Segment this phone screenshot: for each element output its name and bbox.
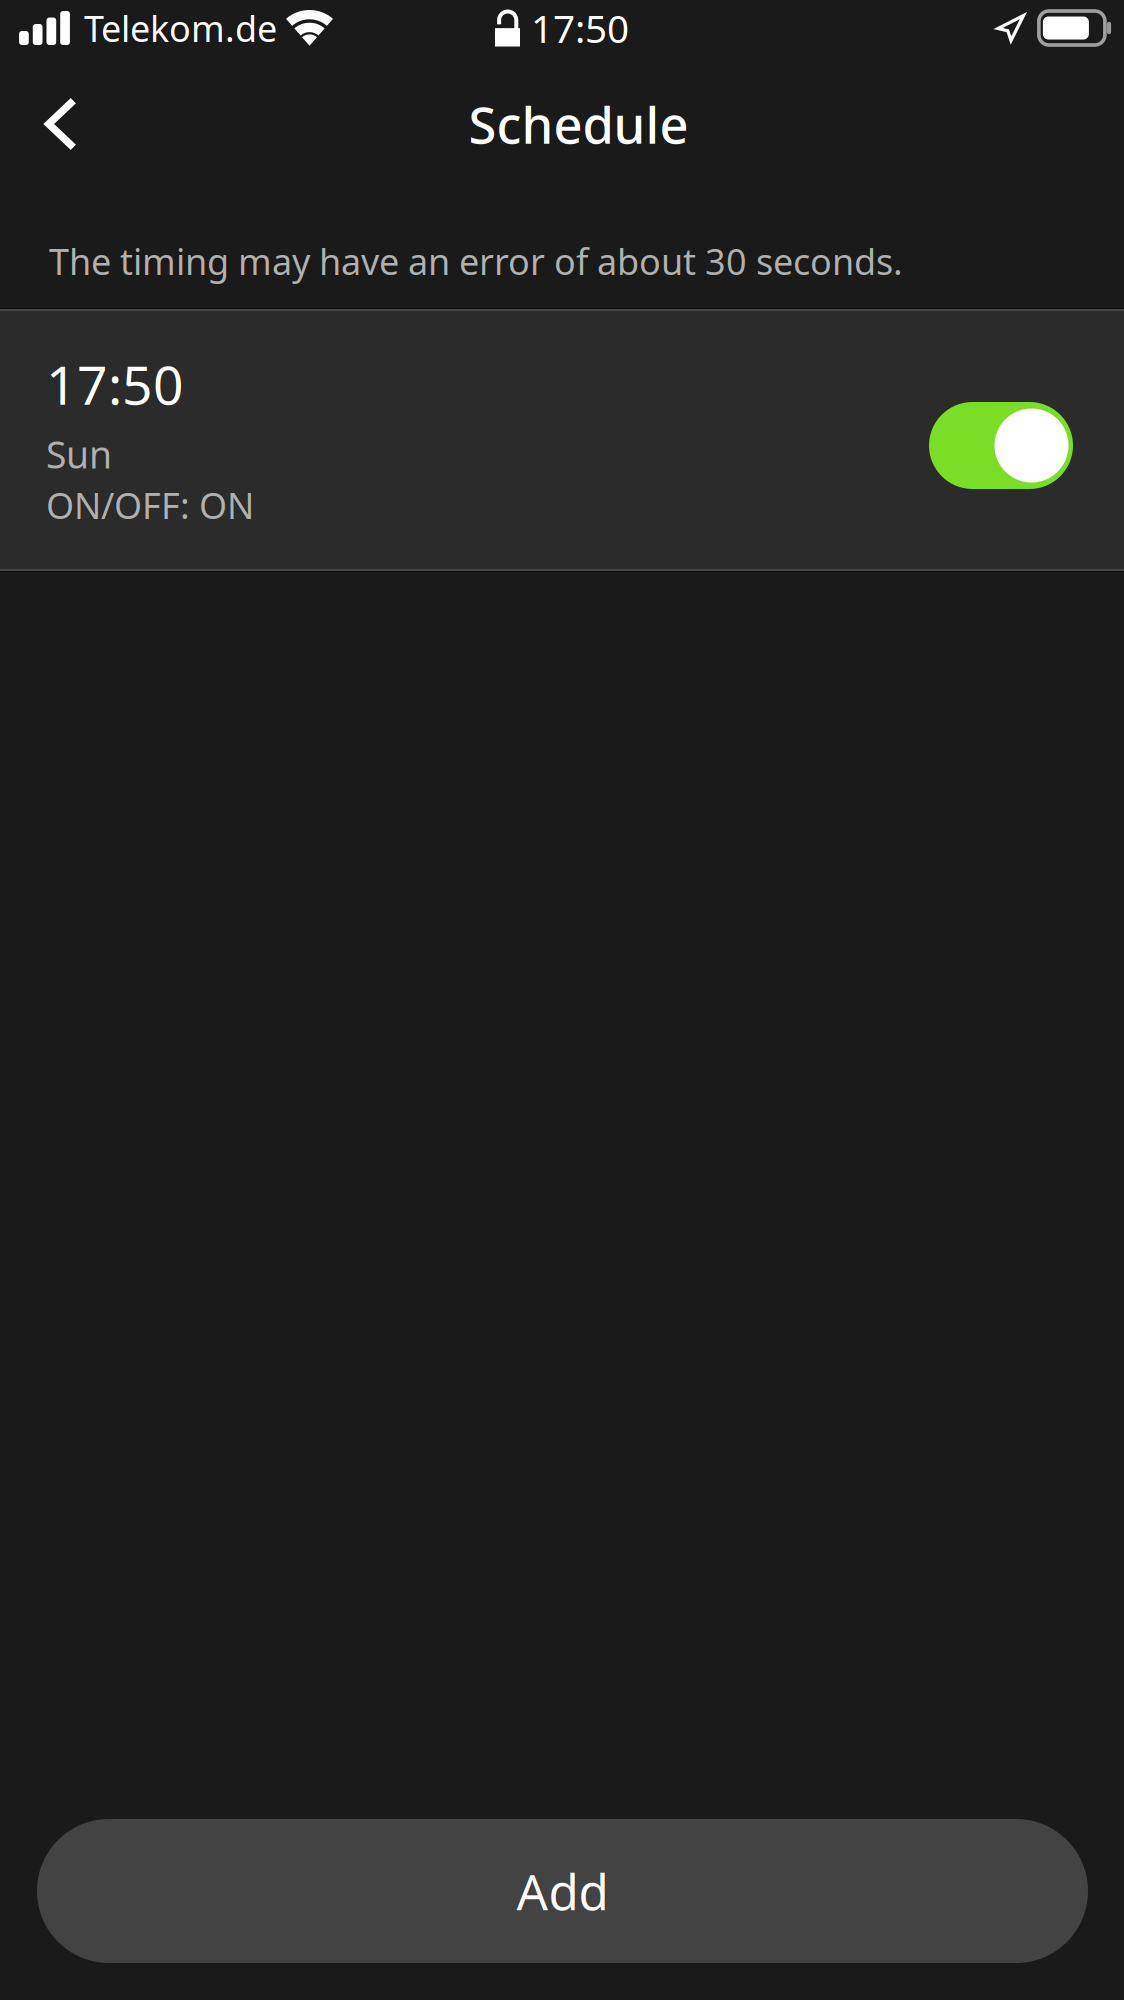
staticText: Telekom.de [84, 4, 277, 52]
staticText: ON/OFF: ON [46, 481, 254, 529]
button[interactable]: Back [0, 56, 122, 192]
staticText: Sun [46, 429, 112, 479]
button[interactable]: 17:50 [0, 308, 1124, 572]
staticText: 17:50 [531, 2, 629, 54]
staticText: Add [516, 1858, 608, 1924]
staticText: The timing may have an error of about 30… [49, 237, 903, 285]
button[interactable]: Add [37, 1819, 1088, 1963]
staticText: Schedule [468, 90, 688, 158]
staticText: 17:50 [46, 349, 184, 419]
